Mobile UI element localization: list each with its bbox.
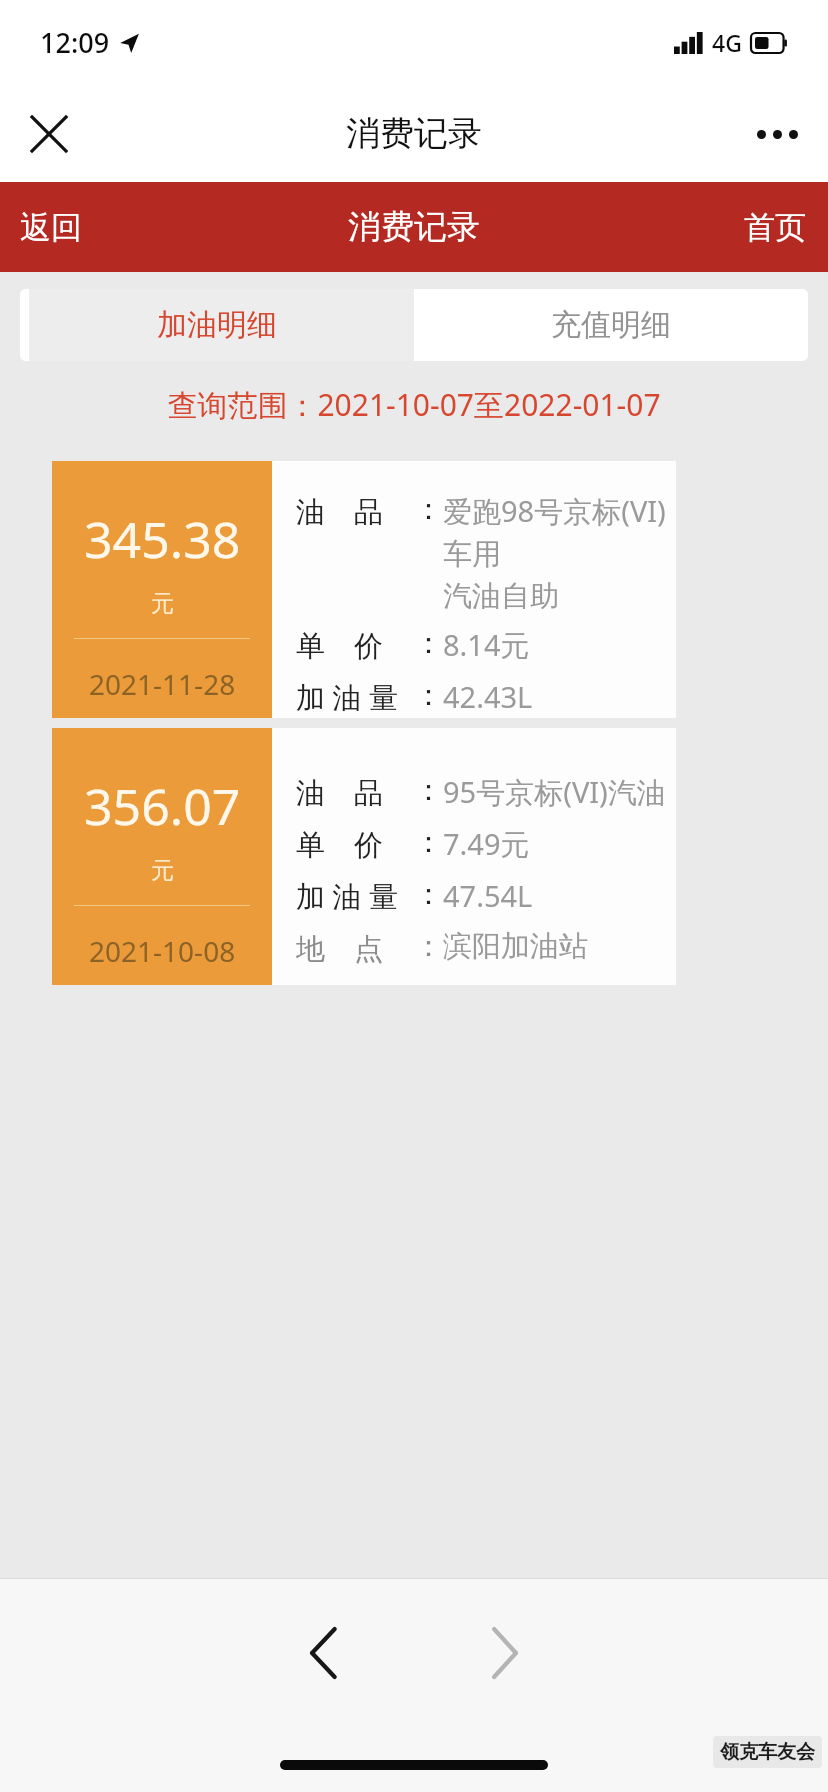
staticText: ： (414, 876, 443, 913)
staticText: 加油明细 (157, 306, 277, 344)
staticText: 12:09 (40, 24, 110, 61)
staticText: 充值明细 (551, 306, 671, 344)
staticText: ： (414, 677, 443, 714)
staticText: ： (414, 772, 443, 809)
staticText: 消费记录 (348, 206, 480, 248)
button[interactable]: 首页 (724, 198, 828, 257)
button[interactable]: 加油明细 (20, 289, 414, 361)
button[interactable]: More options (746, 103, 808, 165)
staticText: 元 (151, 856, 174, 885)
staticText: 元 (151, 589, 174, 618)
staticText: 首页 (744, 208, 806, 247)
button[interactable]: 返回 (0, 198, 102, 257)
staticText: 加 油 量 (296, 876, 399, 916)
staticText: ： (414, 928, 443, 965)
staticText: 2021-10-08 (89, 932, 236, 970)
staticText: 356.07 (84, 772, 241, 840)
staticText: 4G (712, 27, 742, 58)
staticText: 加 油 量 (296, 677, 399, 717)
staticText: 返回 (20, 208, 82, 247)
button[interactable]: 345.38 (52, 461, 676, 718)
staticText: 2021-11-28 (89, 665, 236, 703)
staticText: 滨阳加油站 (443, 928, 588, 965)
staticText: 345.38 (84, 505, 241, 573)
staticText: 爱跑98号京标(VI)车用 汽油自助 (443, 491, 676, 615)
button[interactable]: 充值明细 (414, 289, 808, 361)
button[interactable]: Back (285, 1615, 361, 1691)
staticText: ： (414, 491, 443, 528)
button[interactable]: 356.07 (52, 728, 676, 985)
staticText: 7.49元 (443, 824, 530, 864)
staticText: ： (414, 824, 443, 861)
staticText: 47.54L (443, 876, 533, 915)
staticText: 95号京标(VI)汽油 (443, 772, 666, 812)
staticText: 油 品 (296, 772, 383, 812)
button[interactable]: Close (18, 103, 80, 165)
staticText: 42.43L (443, 677, 533, 716)
staticText: 领克车友会 (720, 1740, 815, 1764)
staticText: ： (414, 625, 443, 662)
staticText: 单 价 (296, 824, 383, 864)
staticText: 单 价 (296, 625, 383, 665)
staticText: 地 点 (296, 928, 383, 968)
staticText: 油 品 (296, 491, 383, 531)
staticText: 消费记录 (346, 112, 482, 155)
staticText: 8.14元 (443, 625, 530, 665)
staticText: 查询范围：2021-10-07至2022-01-07 (0, 384, 828, 425)
button[interactable]: Forward (467, 1615, 543, 1691)
